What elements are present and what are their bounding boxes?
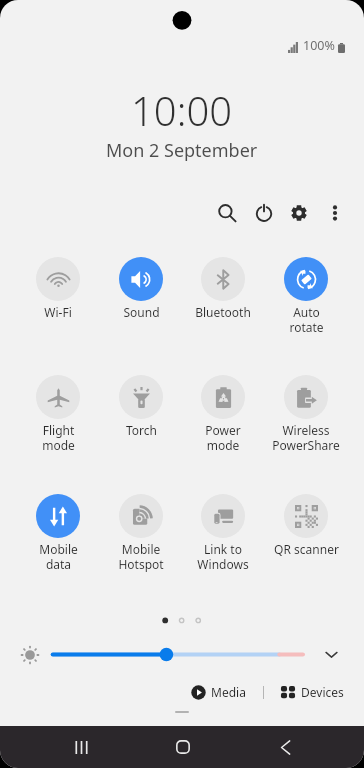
staticText: Wi-Fi (44, 304, 72, 320)
staticText: Sound (123, 304, 160, 320)
button[interactable]: Expand brightness (320, 643, 342, 665)
button[interactable]: Bluetooth (182, 257, 264, 320)
button[interactable]: Wireless PowerShare (265, 375, 347, 453)
button[interactable]: Mobile Hotspot (100, 494, 182, 572)
staticText: Devices (301, 684, 344, 700)
button[interactable]: Devices (278, 681, 346, 703)
staticText: Bluetooth (195, 304, 251, 320)
button[interactable]: Media (189, 681, 248, 703)
staticText: 100% (303, 37, 335, 54)
staticText: QR scanner (274, 541, 339, 557)
staticText: Wireless PowerShare (272, 422, 340, 453)
button[interactable]: Torch (100, 375, 182, 438)
button[interactable]: Recents (60, 726, 103, 768)
staticText: Mobile Hotspot (118, 541, 164, 572)
button[interactable]: Power mode (182, 375, 264, 453)
staticText: Link to Windows (197, 541, 249, 572)
staticText: Mon 2 September (106, 138, 258, 163)
staticText: Flight mode (42, 422, 75, 453)
staticText: Media (211, 684, 246, 700)
staticText: 10:00 (131, 83, 233, 137)
button[interactable]: Link to Windows (182, 494, 264, 572)
staticText: Torch (126, 422, 157, 438)
button[interactable]: Search (209, 195, 245, 231)
button[interactable]: QR scanner (265, 494, 347, 557)
button[interactable]: More options (317, 195, 353, 231)
button[interactable]: Wi-Fi (17, 257, 99, 320)
button[interactable]: Settings (281, 195, 317, 231)
button[interactable]: Power off (246, 195, 282, 231)
button[interactable]: Back (263, 726, 307, 768)
button[interactable]: Mobile data (17, 494, 99, 572)
button[interactable]: Home (161, 726, 205, 768)
button[interactable]: Flight mode (17, 375, 99, 453)
staticText: Mobile data (39, 541, 78, 572)
button[interactable]: Brightness (21, 646, 39, 664)
button[interactable]: Auto rotate (265, 257, 347, 335)
staticText: Auto rotate (289, 304, 324, 335)
staticText: Power mode (205, 422, 241, 453)
button[interactable]: Sound (100, 257, 182, 320)
